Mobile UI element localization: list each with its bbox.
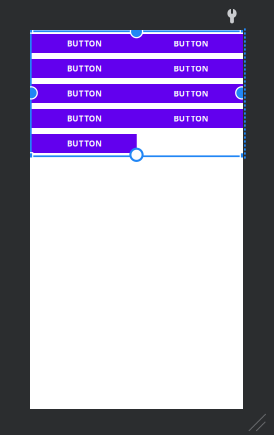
button[interactable]: BUTTON [30,59,136,78]
staticText: BUTTON [67,38,102,49]
button[interactable]: BUTTON [30,84,136,103]
staticText: BUTTON [173,88,209,99]
staticText: BUTTON [173,63,209,74]
button[interactable]: BUTTON [136,34,243,53]
staticText: BUTTON [67,113,102,124]
button[interactable]: BUTTON [30,109,136,128]
staticText: BUTTON [67,63,102,74]
staticText: BUTTON [173,113,209,124]
button[interactable]: BUTTON [136,109,243,128]
button[interactable]: BUTTON [30,134,136,153]
staticText: BUTTON [67,88,102,99]
button[interactable]: BUTTON [136,59,243,78]
staticText: BUTTON [67,138,102,149]
button[interactable]: Tools [220,3,244,33]
staticText: BUTTON [173,38,209,49]
button[interactable]: BUTTON [136,84,243,103]
button[interactable]: BUTTON [30,34,136,53]
